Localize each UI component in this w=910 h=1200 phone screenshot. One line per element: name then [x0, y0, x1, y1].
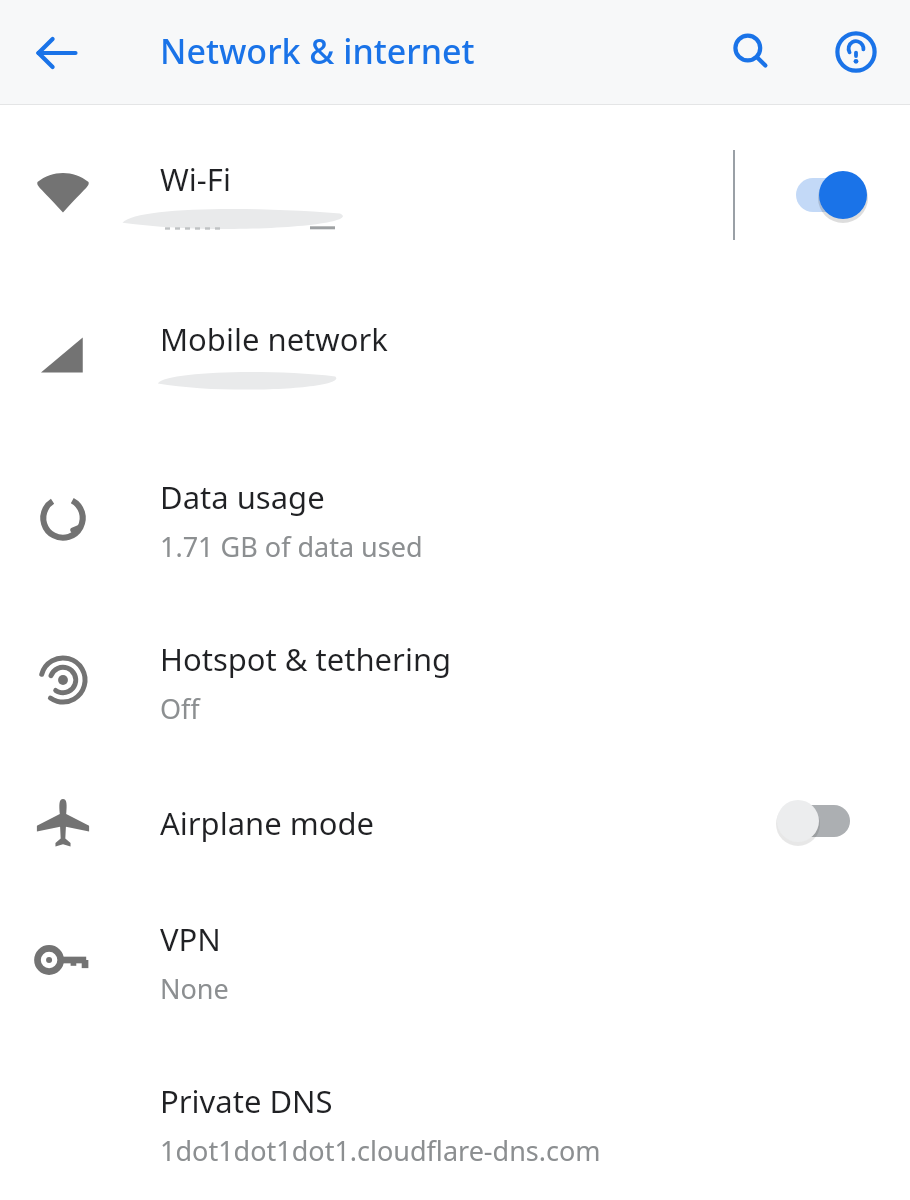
staticText: Data usage — [160, 476, 325, 518]
staticText: None — [160, 970, 229, 1007]
staticText: Wi-Fi — [160, 158, 231, 200]
staticText: Network & internet — [160, 28, 475, 74]
staticText: VPN — [160, 918, 221, 960]
staticText: Hotspot & tethering — [160, 638, 452, 680]
staticText: Off — [160, 690, 200, 727]
button[interactable]: Hotspot & tethering — [0, 605, 910, 755]
button[interactable]: Back — [22, 18, 92, 88]
button[interactable]: Airplane mode — [0, 748, 910, 894]
button[interactable]: Data usage — [0, 443, 910, 593]
staticText: Airplane mode — [160, 802, 375, 844]
button[interactable]: Wi-Fi — [0, 120, 910, 270]
staticText: Private DNS — [160, 1080, 333, 1122]
staticText: 1.71 GB of data used — [160, 528, 423, 565]
button[interactable]: Help — [820, 16, 892, 88]
button[interactable]: Private DNS — [0, 1047, 910, 1197]
button[interactable]: Mobile network — [0, 280, 910, 430]
staticText: Mobile network — [160, 318, 388, 360]
button[interactable]: VPN — [0, 885, 910, 1035]
button[interactable]: Search — [715, 16, 787, 88]
staticText: 1dot1dot1dot1.cloudflare-dns.com — [160, 1132, 601, 1169]
button[interactable]: Wi-Fi on — [780, 147, 880, 243]
button[interactable]: Airplane mode off — [760, 773, 865, 869]
